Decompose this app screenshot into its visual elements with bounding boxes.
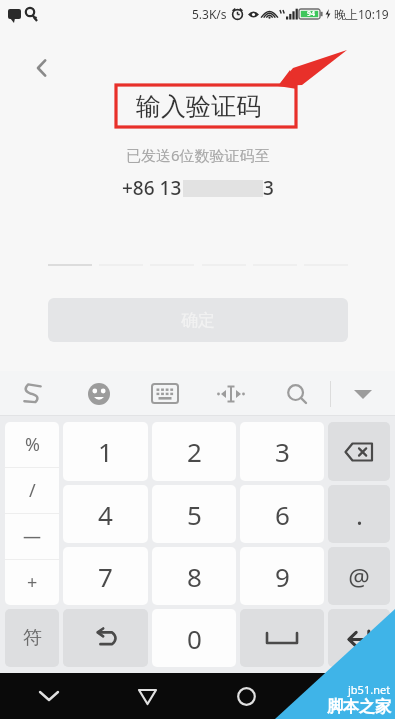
staticText: 5: [187, 497, 202, 532]
staticText: 4: [98, 497, 113, 532]
button[interactable]: @: [328, 547, 390, 605]
button[interactable]: Undo: [63, 609, 148, 667]
button[interactable]: 9: [240, 547, 324, 605]
button[interactable]: +: [5, 560, 59, 605]
staticText: 7: [98, 559, 113, 594]
staticText: 6: [275, 497, 290, 532]
button[interactable]: Enter: [328, 609, 390, 667]
button[interactable]: 2: [152, 422, 236, 481]
staticText: 8: [187, 559, 202, 594]
button[interactable]: Back: [24, 50, 60, 86]
button[interactable]: 0: [152, 609, 236, 667]
button[interactable]: 4: [63, 485, 148, 543]
button[interactable]: Hide: [0, 673, 98, 719]
staticText: 确定: [181, 310, 215, 331]
staticText: 2: [187, 434, 202, 469]
button[interactable]: 8: [152, 547, 236, 605]
staticText: +86 13: [122, 175, 182, 201]
button[interactable]: Emoji: [66, 371, 132, 416]
button[interactable]: .: [328, 485, 390, 543]
staticText: jb51.net: [348, 682, 391, 697]
staticText: 符: [23, 626, 42, 650]
button[interactable]: 6: [240, 485, 324, 543]
staticText: 9: [275, 559, 290, 594]
staticText: —: [23, 524, 41, 549]
staticText: /: [29, 478, 36, 503]
button[interactable]: —: [5, 514, 59, 559]
button[interactable]: Sogou input: [0, 371, 66, 416]
staticText: 94: [307, 9, 316, 19]
button[interactable]: Move cursor: [198, 371, 264, 416]
button[interactable]: %: [5, 422, 59, 467]
staticText: 3: [275, 434, 290, 469]
staticText: 晚上10:19: [334, 6, 389, 22]
button[interactable]: Hide keyboard: [331, 371, 395, 416]
button[interactable]: Space: [240, 609, 324, 667]
staticText: 3: [263, 175, 274, 201]
staticText: 脚本之家: [327, 697, 391, 717]
staticText: 已发送6位数验证码至: [126, 145, 270, 165]
staticText: @: [348, 560, 370, 593]
staticText: 0: [187, 621, 202, 656]
staticText: %: [25, 432, 40, 457]
staticText: 输入验证码: [136, 91, 261, 122]
button[interactable]: Search: [264, 371, 330, 416]
button[interactable]: 1: [63, 422, 148, 481]
button[interactable]: Backspace: [328, 422, 390, 481]
button[interactable]: 符: [5, 609, 59, 667]
button[interactable]: 7: [63, 547, 148, 605]
staticText: .: [356, 497, 363, 532]
button[interactable]: Back: [98, 673, 197, 719]
button[interactable]: 5: [152, 485, 236, 543]
staticText: 1: [98, 434, 113, 469]
button[interactable]: Keyboard layout: [132, 371, 198, 416]
button[interactable]: Home: [197, 673, 296, 719]
staticText: 5.3K/s: [192, 6, 227, 22]
staticText: +: [27, 570, 38, 595]
button[interactable]: 3: [240, 422, 324, 481]
button[interactable]: /: [5, 468, 59, 513]
